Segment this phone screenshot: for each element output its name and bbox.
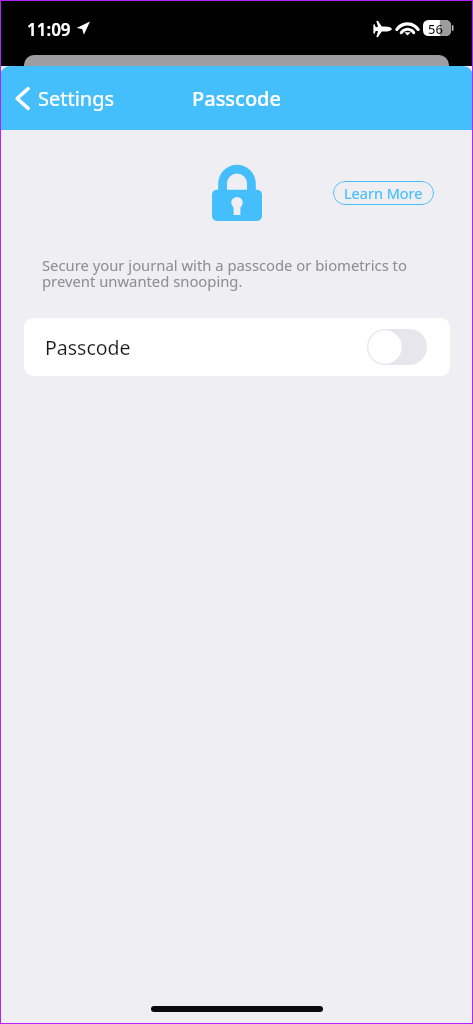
button[interactable]: Passcode toggle	[367, 329, 427, 365]
button[interactable]: Passcode	[24, 318, 450, 376]
button[interactable]: Settings	[0, 76, 125, 120]
staticText: Settings	[38, 85, 115, 112]
staticText: 56	[428, 20, 443, 36]
other: Wi-Fi	[398, 20, 417, 35]
staticText: Learn More	[344, 183, 423, 203]
staticText: Passcode	[45, 334, 131, 361]
staticText: Secure your journal with a passcode or b…	[42, 255, 416, 291]
button[interactable]: Learn More	[333, 181, 434, 205]
other: Battery 56 percent	[423, 20, 454, 36]
other: Airplane mode	[373, 20, 392, 38]
other: Location	[76, 21, 90, 35]
staticText: Passcode	[192, 85, 281, 112]
staticText: 11:09	[27, 18, 71, 38]
